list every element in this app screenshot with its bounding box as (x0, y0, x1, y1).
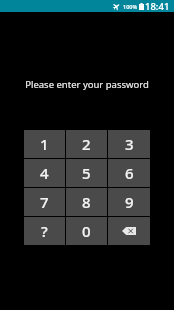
staticText: 8 (82, 192, 91, 212)
staticText: 5 (82, 163, 91, 183)
button[interactable]: ? (24, 217, 65, 245)
staticText: 2 (82, 134, 91, 154)
staticText: 1 (40, 134, 49, 154)
button[interactable]: 2 (66, 130, 107, 158)
button[interactable]: 7 (24, 188, 65, 216)
button[interactable]: 8 (66, 188, 107, 216)
staticText: 7 (40, 192, 49, 212)
button[interactable]: 0 (66, 217, 107, 245)
staticText: 4 (40, 163, 49, 183)
button[interactable]: 9 (108, 188, 150, 216)
staticText: 9 (125, 192, 134, 212)
button[interactable]: 3 (108, 130, 150, 158)
staticText: 100% (123, 3, 138, 10)
staticText: 18:41 (145, 0, 170, 12)
staticText: 6 (125, 163, 134, 183)
button[interactable]: 5 (66, 159, 107, 187)
staticText: Please enter your password (0, 78, 174, 91)
button[interactable]: Delete (108, 217, 150, 245)
staticText: 0 (82, 221, 91, 241)
staticText: ? (41, 221, 48, 241)
button[interactable]: 4 (24, 159, 65, 187)
button[interactable]: 1 (24, 130, 65, 158)
button[interactable]: 6 (108, 159, 150, 187)
staticText: 3 (125, 134, 134, 154)
